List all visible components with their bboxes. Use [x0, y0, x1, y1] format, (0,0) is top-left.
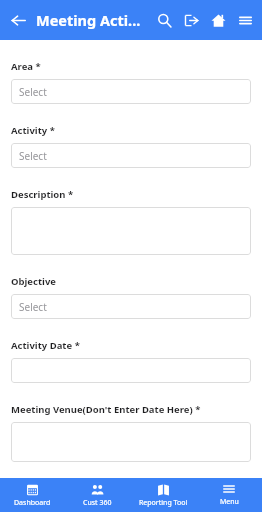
button[interactable]: Menu — [196, 478, 262, 512]
button[interactable]: Search — [151, 7, 178, 34]
button[interactable]: Home — [205, 7, 232, 34]
staticText: Meeting Venue(Don't Enter Date Here) * — [11, 403, 201, 416]
staticText: Cust 360 — [83, 498, 112, 508]
staticText: Reporting Tool — [139, 498, 188, 508]
staticText: Description * — [11, 188, 74, 201]
staticText: Menu — [220, 497, 239, 507]
staticText: Dashboard — [14, 498, 51, 508]
button[interactable]: Open navigation menu — [232, 7, 259, 34]
button[interactable] — [11, 207, 251, 255]
staticText: Select — [19, 149, 47, 163]
staticText: Select — [19, 300, 47, 314]
staticText: Meeting Acti... — [36, 10, 141, 30]
staticText: Objective — [11, 275, 56, 288]
button[interactable]: Reporting Tool — [130, 478, 196, 512]
button[interactable] — [11, 422, 251, 462]
staticText: Activity * — [11, 124, 55, 137]
button[interactable]: Back — [5, 7, 31, 33]
button[interactable] — [11, 358, 251, 383]
staticText: Activity Date * — [11, 339, 80, 352]
staticText: Select — [19, 85, 47, 99]
button[interactable]: Select — [11, 143, 251, 168]
staticText: Area * — [11, 60, 41, 73]
button[interactable]: Dashboard — [0, 478, 65, 512]
button[interactable]: Logout — [178, 7, 205, 34]
button[interactable]: Cust 360 — [65, 478, 130, 512]
button[interactable]: Select — [11, 79, 251, 104]
button[interactable]: Select — [11, 294, 251, 319]
